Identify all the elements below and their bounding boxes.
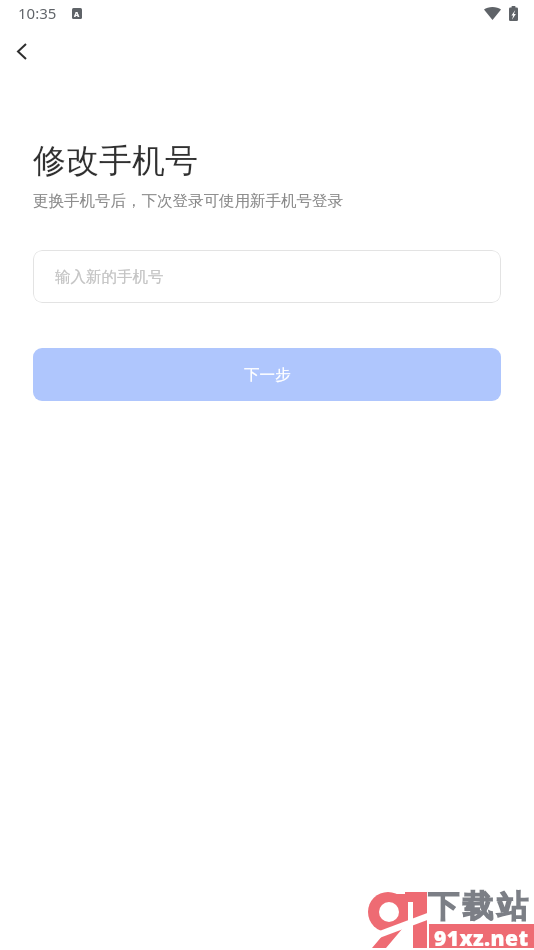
staticText: A <box>74 9 80 19</box>
button[interactable]: Back <box>1 30 43 72</box>
staticText: 输入新的手机号 <box>55 267 164 287</box>
staticText: 91xz.net <box>434 924 529 948</box>
staticText: 下一步 <box>244 365 291 385</box>
staticText: 修改手机号 <box>33 140 198 182</box>
staticText: 下载站 <box>428 887 532 926</box>
staticText: 10:35 <box>18 3 57 23</box>
button[interactable]: 下一步 <box>33 348 501 401</box>
button[interactable]: 输入新的手机号 <box>33 250 501 303</box>
staticText: 更换手机号后，下次登录可使用新手机号登录 <box>33 191 343 211</box>
